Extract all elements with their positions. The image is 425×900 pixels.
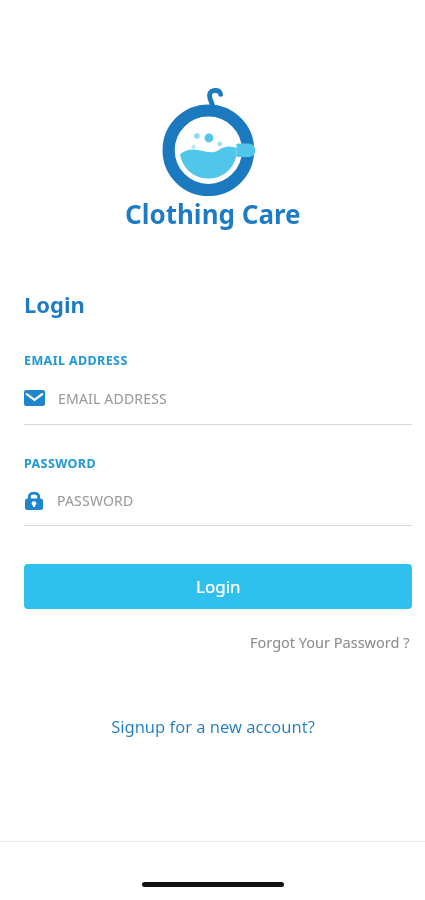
other: Password [25, 490, 43, 510]
staticText: PASSWORD [57, 491, 134, 510]
staticText: Login [24, 289, 85, 319]
staticText: PASSWORD [24, 455, 96, 472]
staticText: Signup for a new account? [111, 715, 315, 737]
button[interactable]: Forgot Your Password ? [248, 629, 412, 655]
other: Email address [24, 390, 45, 406]
button[interactable]: Email address [0, 385, 425, 425]
button[interactable]: Signup for a new account? [105, 711, 321, 741]
staticText: Clothing Care [125, 196, 301, 231]
button[interactable]: Login [24, 564, 412, 609]
staticText: EMAIL ADDRESS [24, 352, 128, 369]
staticText: Forgot Your Password ? [250, 632, 410, 652]
staticText: Login [196, 575, 241, 598]
button[interactable]: Password [0, 487, 425, 526]
staticText: EMAIL ADDRESS [58, 389, 167, 408]
